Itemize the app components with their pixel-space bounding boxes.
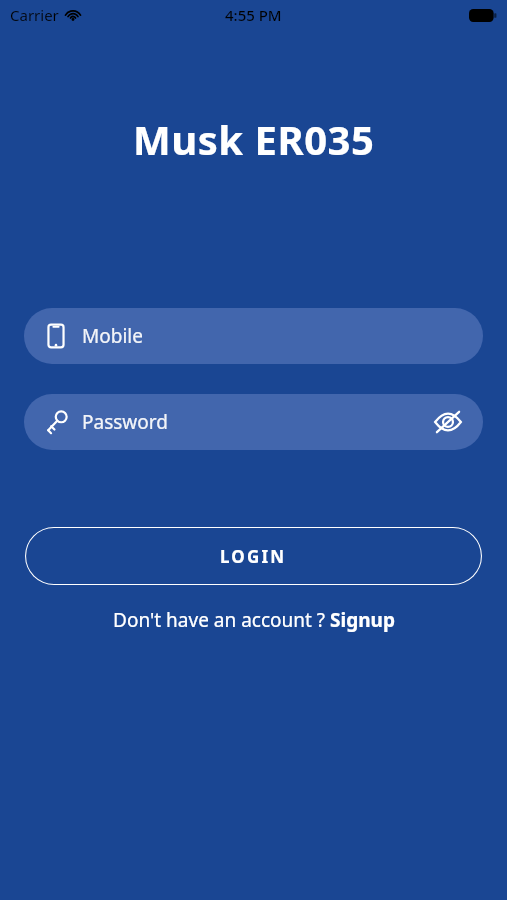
staticText: Password	[82, 409, 168, 435]
button[interactable]: Show password	[431, 405, 465, 439]
staticText: Don't have an account ? Signup	[113, 607, 395, 633]
staticText: Mobile	[82, 323, 143, 349]
staticText: LOGIN	[220, 545, 287, 568]
button[interactable]: Don't have an account ? Signup	[105, 605, 403, 635]
staticText: Carrier	[10, 5, 59, 25]
button[interactable]: LOGIN	[25, 527, 482, 585]
staticText: Musk ER035	[133, 112, 375, 166]
button[interactable]: Mobile	[24, 308, 483, 364]
button[interactable]: Password	[24, 394, 483, 450]
staticText: 4:55 PM	[225, 5, 282, 25]
